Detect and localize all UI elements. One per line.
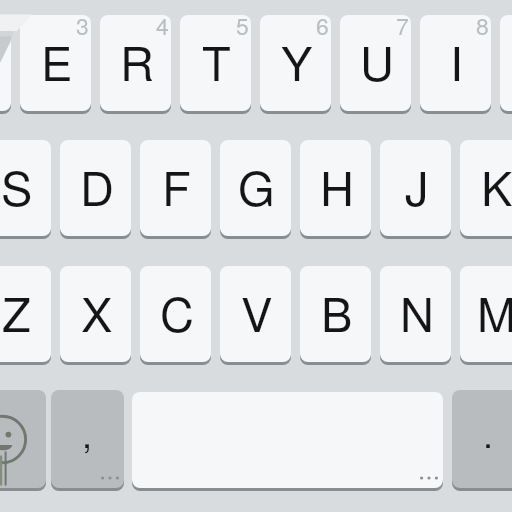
staticText: S	[1, 152, 33, 219]
button[interactable]: M	[460, 266, 512, 362]
button[interactable]: ,	[51, 390, 124, 488]
staticText: D	[80, 152, 114, 219]
staticText: B	[321, 278, 353, 345]
staticText: 7	[396, 15, 409, 42]
button[interactable]: H	[300, 140, 371, 236]
button[interactable]: Y	[260, 15, 331, 111]
staticText: N	[400, 278, 434, 345]
button[interactable]: R	[100, 15, 171, 111]
button[interactable]: C	[140, 266, 211, 362]
button[interactable]: J	[380, 140, 451, 236]
staticText: V	[241, 278, 273, 345]
button[interactable]: Space	[132, 392, 443, 488]
staticText: Z	[2, 278, 31, 345]
button[interactable]: T	[180, 15, 251, 111]
staticText: 5	[236, 15, 249, 42]
staticText: K	[481, 152, 512, 219]
staticText: .	[483, 407, 494, 459]
button[interactable]: Emoji keyboard	[0, 390, 46, 488]
button[interactable]: .	[452, 390, 512, 488]
button[interactable]: D	[60, 140, 131, 236]
staticText: R	[120, 27, 154, 94]
button[interactable]: N	[380, 266, 451, 362]
staticText: M	[477, 278, 512, 345]
button[interactable]: W	[0, 15, 11, 111]
staticText: T	[202, 27, 231, 94]
button[interactable]: F	[140, 140, 211, 236]
staticText: ,	[82, 407, 93, 459]
button[interactable]: E	[20, 15, 91, 111]
button[interactable]: B	[300, 266, 371, 362]
staticText: G	[238, 152, 275, 219]
staticText: X	[81, 278, 113, 345]
staticText: F	[162, 152, 191, 219]
staticText: 4	[156, 15, 169, 42]
button[interactable]: U	[340, 15, 411, 111]
staticText: 8	[476, 15, 489, 42]
staticText: 3	[76, 15, 89, 42]
staticText: J	[405, 152, 429, 219]
button[interactable]: X	[60, 266, 131, 362]
staticText: C	[160, 278, 194, 345]
staticText: 6	[316, 15, 329, 42]
staticText: E	[41, 27, 73, 94]
button[interactable]: O	[500, 15, 512, 111]
staticText: Y	[281, 27, 313, 94]
staticText: U	[360, 27, 394, 94]
button[interactable]: V	[220, 266, 291, 362]
staticText: H	[320, 152, 354, 219]
button[interactable]: I	[420, 15, 491, 111]
button[interactable]: Z	[0, 266, 51, 362]
button[interactable]: G	[220, 140, 291, 236]
button[interactable]: S	[0, 140, 51, 236]
staticText: I	[450, 27, 464, 94]
button[interactable]: K	[460, 140, 512, 236]
